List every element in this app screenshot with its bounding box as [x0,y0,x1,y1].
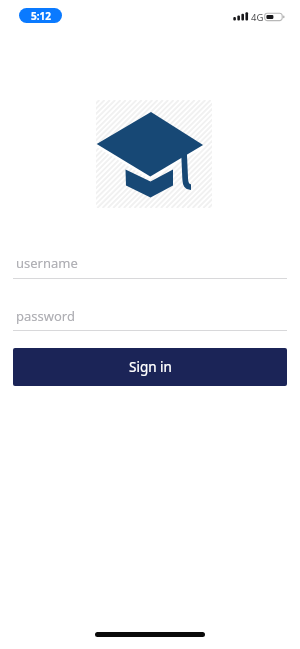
staticText: username [16,254,78,272]
button[interactable]: password [13,301,287,331]
staticText: 5:12 [31,9,51,23]
button[interactable]: username [13,249,287,279]
staticText: Sign in [129,358,172,376]
button[interactable]: Sign in [13,348,287,386]
button[interactable]: 5:12 [19,8,62,23]
staticText: password [16,307,75,325]
staticText: 4G [251,11,264,24]
